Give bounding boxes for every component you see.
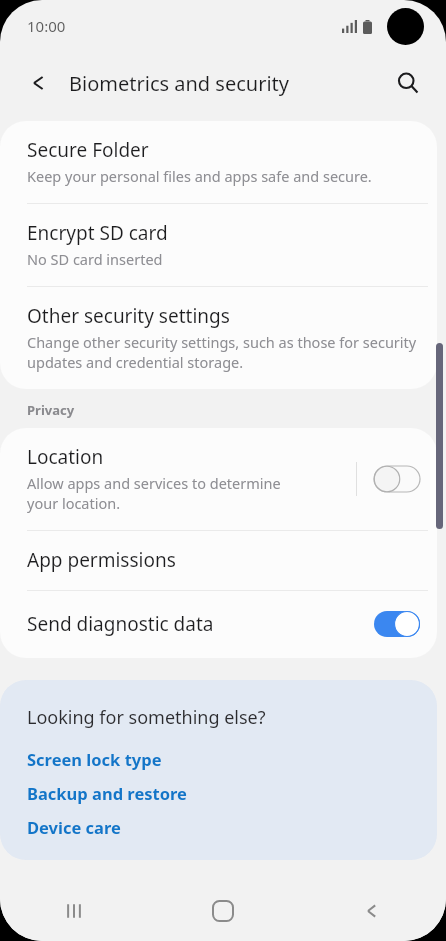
- button[interactable]: Search: [386, 61, 430, 105]
- staticText: Privacy: [27, 401, 75, 419]
- staticText: Secure Folder: [27, 137, 149, 163]
- staticText: Looking for something else?: [27, 705, 266, 730]
- button[interactable]: Back: [297, 880, 446, 941]
- staticText: Allow apps and services to determine you…: [27, 473, 290, 513]
- button[interactable]: Home: [148, 880, 297, 941]
- button[interactable]: Location: [0, 428, 437, 530]
- button[interactable]: Back: [18, 62, 60, 104]
- button[interactable]: Recents: [0, 880, 148, 941]
- staticText: Change other security settings, such as …: [27, 332, 423, 372]
- staticText: Keep your personal files and apps safe a…: [27, 166, 372, 186]
- button[interactable]: Encrypt SD card: [0, 204, 437, 286]
- staticText: Location: [27, 444, 104, 470]
- button[interactable]: Device care: [27, 816, 121, 838]
- staticText: Screen lock type: [27, 748, 162, 770]
- staticText: 10:00: [27, 16, 66, 36]
- button[interactable]: Send diagnostic data: [0, 591, 437, 658]
- button[interactable]: App permissions: [0, 531, 437, 590]
- button[interactable]: Screen lock type: [27, 748, 162, 770]
- staticText: No SD card inserted: [27, 249, 163, 269]
- button[interactable]: On: [371, 607, 423, 641]
- staticText: Device care: [27, 816, 121, 838]
- staticText: Other security settings: [27, 303, 230, 329]
- staticText: Biometrics and security: [69, 70, 289, 97]
- staticText: App permissions: [27, 547, 176, 573]
- button[interactable]: Other security settings: [0, 287, 437, 389]
- button[interactable]: Secure Folder: [0, 121, 437, 203]
- staticText: Encrypt SD card: [27, 220, 168, 246]
- button[interactable]: Off: [371, 462, 423, 496]
- staticText: Send diagnostic data: [27, 611, 214, 637]
- staticText: Backup and restore: [27, 782, 187, 804]
- button[interactable]: Backup and restore: [27, 782, 187, 804]
